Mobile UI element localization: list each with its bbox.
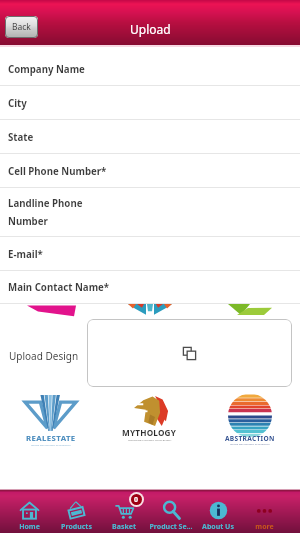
staticText: REALESTATE [26, 433, 76, 444]
staticText: ABSTRACTION [225, 434, 275, 443]
button[interactable]: Main Contact Name* [0, 271, 300, 304]
button[interactable]: Basket [100, 489, 147, 533]
staticText: Cell Phone Number* [8, 165, 107, 178]
other: Product Search [162, 501, 181, 520]
staticText: Main Contact Name* [8, 281, 110, 294]
button[interactable]: Product Search [147, 489, 194, 533]
button[interactable]: Back [5, 16, 38, 38]
button[interactable]: Home [6, 489, 53, 533]
button[interactable]: About Us [194, 489, 241, 533]
button[interactable]: Company Name [0, 52, 300, 86]
staticText: E-mail* [8, 248, 43, 261]
staticText: more [255, 522, 274, 532]
other: Basket [115, 501, 134, 520]
other: Home [20, 501, 39, 520]
staticText: Company Name [8, 63, 85, 76]
staticText: Upload [130, 21, 171, 37]
button[interactable]: REALESTATE [13, 395, 88, 447]
other: Products [67, 501, 86, 520]
button[interactable]: City [0, 86, 300, 120]
staticText: Product Se... [149, 522, 193, 532]
other: About Us [209, 501, 228, 520]
staticText: 0 [134, 495, 139, 505]
button[interactable]: State [0, 120, 300, 154]
button[interactable]: MYTHOLOGY [112, 396, 187, 441]
button[interactable]: Products [53, 489, 100, 533]
staticText: MYTHOLOGY [122, 427, 177, 438]
staticText: About Us [202, 522, 234, 532]
button[interactable]: Cell Phone Number* [0, 154, 300, 188]
staticText: Landline Phone Number [8, 197, 83, 228]
staticText: Upload Design [9, 349, 79, 363]
button[interactable]: ABSTRACTION [212, 399, 287, 446]
staticText: State [8, 131, 34, 144]
button[interactable]: Upload Design [87, 319, 292, 387]
staticText: Back [12, 21, 31, 33]
button[interactable]: Landline Phone Number [0, 188, 300, 237]
staticText: Products [61, 522, 92, 532]
staticText: City [8, 97, 27, 110]
staticText: VECTOR IDEA CONCEPT ILLUSTRATION [128, 438, 172, 441]
other: More [255, 501, 274, 520]
staticText: VECTOR IDEA CONCEPT ILLUSTRATION [31, 444, 71, 447]
staticText: VECTOR IDEA CONCEPT ILLUSTRATION [230, 443, 270, 446]
staticText: Home [19, 522, 40, 532]
button[interactable]: E-mail* [0, 237, 300, 271]
button[interactable]: More [241, 489, 288, 533]
staticText: Basket [112, 522, 136, 532]
